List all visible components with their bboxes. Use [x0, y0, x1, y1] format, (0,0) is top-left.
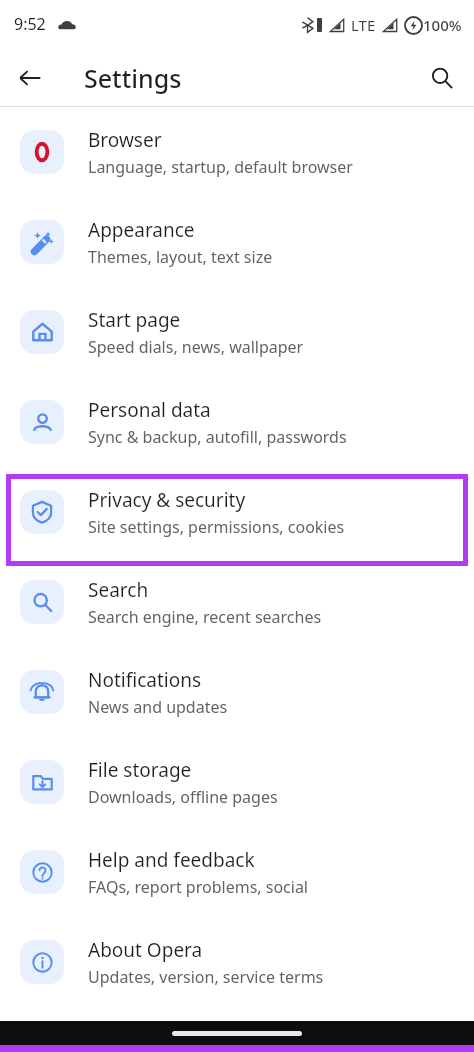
staticText: Appearance — [88, 217, 195, 243]
button[interactable]: Notifications — [0, 647, 474, 737]
staticText: 9:52 — [14, 13, 46, 35]
staticText: News and updates — [88, 696, 228, 718]
staticText: Settings — [84, 61, 182, 95]
staticText: About Opera — [88, 937, 203, 963]
staticText: Personal data — [88, 397, 211, 423]
button[interactable]: Personal data — [0, 377, 474, 467]
staticText: 100% — [423, 15, 462, 35]
staticText: FAQs, report problems, social — [88, 876, 309, 898]
button[interactable]: Start page — [0, 287, 474, 377]
button[interactable]: Back — [8, 56, 52, 100]
staticText: Privacy & security — [88, 487, 246, 513]
staticText: LTE — [351, 15, 376, 35]
staticText: Updates, version, service terms — [88, 966, 324, 988]
button[interactable]: Appearance — [0, 197, 474, 287]
staticText: Themes, layout, text size — [88, 246, 273, 268]
staticText: Sync & backup, autofill, passwords — [88, 426, 347, 448]
staticText: Help and feedback — [88, 847, 255, 873]
button[interactable]: Search — [0, 557, 474, 647]
staticText: File storage — [88, 757, 192, 783]
button[interactable]: Search — [420, 56, 464, 100]
staticText: Search engine, recent searches — [88, 606, 322, 628]
button[interactable]: Privacy & security — [0, 467, 474, 557]
staticText: Search — [88, 577, 149, 603]
staticText: Site settings, permissions, cookies — [88, 516, 345, 538]
staticText: Start page — [88, 307, 181, 333]
staticText: Language, startup, default browser — [88, 156, 353, 178]
staticText: Speed dials, news, wallpaper — [88, 336, 304, 358]
staticText: Downloads, offline pages — [88, 786, 278, 808]
button[interactable]: About Opera — [0, 917, 474, 1007]
staticText: Notifications — [88, 667, 202, 693]
button[interactable]: File storage — [0, 737, 474, 827]
staticText: Browser — [88, 127, 162, 153]
button[interactable]: Browser — [0, 107, 474, 197]
button[interactable]: Help and feedback — [0, 827, 474, 917]
